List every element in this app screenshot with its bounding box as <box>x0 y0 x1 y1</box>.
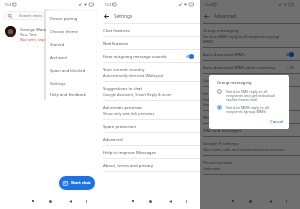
staticText: Group messaging <box>217 80 252 86</box>
staticText: Get delivery reports for messages that y… <box>203 97 264 107</box>
button[interactable]: Chat features <box>100 23 200 36</box>
button[interactable]: Cancel <box>269 119 285 125</box>
button[interactable]: Spam protection <box>100 119 200 132</box>
staticText: You: Test <box>20 32 37 37</box>
button[interactable]: Device pairing <box>46 12 96 25</box>
button[interactable]: Back <box>66 197 74 205</box>
button[interactable]: Send an MMS reply to all recipients (gro… <box>217 105 285 115</box>
button[interactable]: Group messaging <box>200 23 300 47</box>
button[interactable]: Start chat <box>63 176 91 190</box>
button[interactable]: Phone number <box>200 155 300 174</box>
button[interactable]: Google Fi settings <box>200 136 300 155</box>
staticText: Spam and blocked <box>50 68 86 74</box>
staticText: Settings <box>50 81 66 87</box>
staticText: Wireless emergency alerts <box>203 114 256 120</box>
staticText: Send an MMS reply to all recipients (gro… <box>203 34 280 44</box>
button[interactable]: Suggestions in chat <box>100 81 200 100</box>
staticText: Chat features <box>103 27 130 33</box>
staticText: Google Assistant, Smart Reply & more <box>103 92 172 97</box>
staticText: Start chat <box>71 180 91 186</box>
staticText: Sync texts, calls and voicemail across s… <box>203 147 285 152</box>
staticText: George Wang <box>20 26 48 32</box>
staticText: Suggestions in chat <box>103 85 143 91</box>
staticText: Automatically detected (Malaysia) <box>103 73 164 78</box>
button[interactable]: Help to improve Messages <box>100 145 200 158</box>
staticText: Get SMS delivery reports <box>203 90 253 96</box>
button[interactable]: Use simple characters <box>200 73 300 86</box>
staticText: Use simple characters <box>203 77 247 83</box>
button[interactable]: Spam and blocked <box>46 64 96 77</box>
staticText: Auto-download MMS when roaming <box>203 64 284 70</box>
staticText: Spam protection <box>103 123 137 129</box>
staticText: Search texts <box>19 13 42 18</box>
button[interactable]: Wireless emergency alerts <box>200 110 300 123</box>
staticText: Device pairing <box>50 16 78 22</box>
staticText: Group messaging <box>203 27 239 33</box>
button[interactable]: Search texts <box>3 11 44 20</box>
staticText: Send an SMS reply to all recipients and … <box>226 89 285 103</box>
button[interactable]: Recent apps <box>229 197 236 204</box>
button[interactable]: Get SMS delivery reports <box>200 86 300 110</box>
staticText: Choose theme <box>50 29 78 35</box>
staticText: Help and feedback <box>50 92 86 98</box>
staticText: Advanced <box>103 136 123 142</box>
staticText: Send an MMS reply to all recipients (gro… <box>226 105 285 115</box>
button[interactable]: Recent apps <box>129 197 136 204</box>
staticText: About, terms and privacy <box>103 162 154 168</box>
staticText: 10:41 <box>4 2 14 7</box>
staticText: 10:41 <box>104 2 114 7</box>
staticText: Help to improve Messages <box>103 149 156 155</box>
button[interactable]: Recent apps <box>29 197 36 204</box>
button[interactable]: SIM card messages <box>200 123 300 136</box>
staticText: Archived <box>50 55 67 61</box>
button[interactable]: Hear outgoing message sounds <box>100 49 200 62</box>
button[interactable]: Auto-download MMS when roaming <box>200 60 300 73</box>
staticText: Show only web link previews <box>103 111 155 116</box>
button[interactable]: Settings <box>46 77 96 90</box>
staticText: Unknown <box>203 166 221 171</box>
button[interactable]: Your current country <box>100 62 200 81</box>
button[interactable]: Back <box>202 12 211 21</box>
button[interactable]: Home <box>246 197 254 205</box>
button[interactable]: George Wang <box>5 26 100 42</box>
button[interactable]: Auto-download MMS <box>200 47 300 60</box>
button[interactable]: Back <box>102 12 111 21</box>
button[interactable]: Send an SMS reply to all recipients and … <box>217 89 285 103</box>
staticText: Your current country <box>103 66 145 72</box>
staticText: SIM card messages <box>203 127 242 133</box>
button[interactable]: Back <box>266 197 274 205</box>
button[interactable]: Home <box>146 197 154 205</box>
button[interactable]: Starred <box>46 38 96 51</box>
staticText: Notifications <box>103 40 129 46</box>
button[interactable]: Choose theme <box>46 25 96 38</box>
staticText: Google Fi settings <box>203 140 239 146</box>
button[interactable]: Home <box>46 197 54 205</box>
staticText: Starred <box>50 42 65 48</box>
button[interactable]: Help and feedback <box>46 90 96 100</box>
staticText: Automatic previews <box>103 104 143 110</box>
staticText: Auto-download MMS <box>203 51 284 57</box>
button[interactable]: Advanced <box>100 132 200 145</box>
staticText: Advanced <box>214 13 237 20</box>
staticText: 10:41 <box>204 2 214 7</box>
button[interactable]: Archived <box>46 51 96 64</box>
button[interactable]: About, terms and privacy <box>100 158 200 171</box>
staticText: Not sent, tap to try again <box>20 37 67 42</box>
button[interactable]: Automatic previews <box>100 100 200 119</box>
button[interactable]: Notifications <box>100 36 200 49</box>
button[interactable]: Back <box>166 197 174 205</box>
staticText: Hear outgoing message sounds <box>103 53 184 59</box>
staticText: Settings <box>114 13 133 20</box>
staticText: Phone number <box>203 159 233 165</box>
